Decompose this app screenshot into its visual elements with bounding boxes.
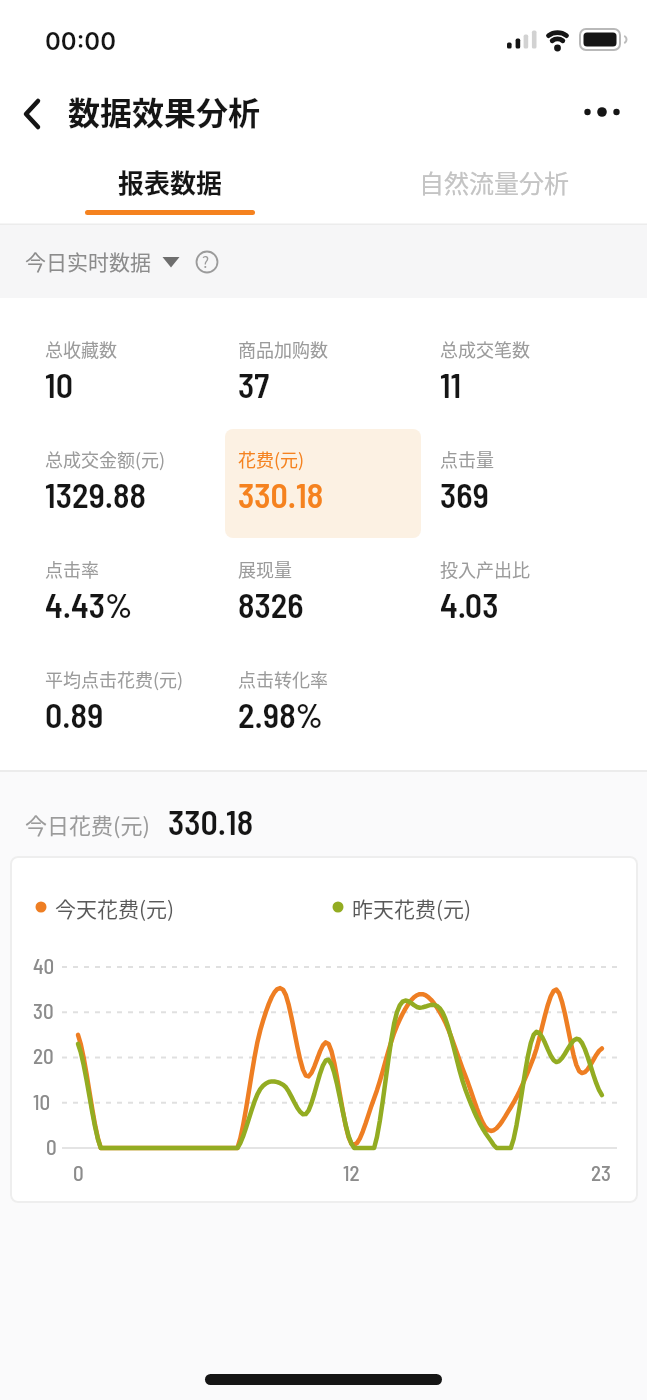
- staticText: 0.89: [45, 694, 104, 735]
- staticText: 37: [238, 364, 270, 405]
- staticText: ?: [202, 251, 210, 273]
- staticText: 今日花费(元): [25, 808, 150, 840]
- staticText: 2.98%: [238, 694, 323, 735]
- staticText: 20: [33, 1043, 54, 1068]
- button[interactable]: [324, 150, 647, 224]
- button[interactable]: [13, 92, 57, 136]
- staticText: 昨天花费(元): [352, 893, 472, 923]
- staticText: 总成交笔数: [440, 336, 530, 362]
- staticText: 点击量: [440, 446, 494, 472]
- staticText: 369: [440, 474, 489, 515]
- staticText: 花费(元): [238, 446, 305, 472]
- staticText: 330.18: [238, 474, 324, 515]
- staticText: 今天花费(元): [55, 893, 175, 923]
- staticText: 12: [343, 1160, 360, 1185]
- button[interactable]: [225, 429, 421, 538]
- staticText: 总收藏数: [45, 336, 117, 362]
- staticText: 10: [33, 1089, 51, 1114]
- button[interactable]: [0, 150, 323, 224]
- staticText: 投入产出比: [440, 556, 530, 582]
- staticText: 点击转化率: [238, 666, 328, 692]
- staticText: 0: [46, 1134, 57, 1159]
- staticText: 10: [45, 364, 73, 405]
- button[interactable]: [578, 92, 630, 132]
- button[interactable]: [0, 225, 647, 298]
- staticText: 30: [33, 998, 54, 1023]
- staticText: 总成交金额(元): [45, 446, 166, 472]
- staticText: 23: [591, 1160, 611, 1185]
- staticText: 展现量: [238, 556, 292, 582]
- staticText: 4.43%: [45, 584, 133, 625]
- staticText: 0: [73, 1160, 84, 1185]
- staticText: 40: [33, 953, 55, 978]
- staticText: 点击率: [45, 556, 99, 582]
- staticText: 自然流量分析: [419, 164, 570, 200]
- staticText: 1329.88: [45, 474, 146, 515]
- staticText: 4.03: [440, 584, 499, 625]
- staticText: 商品加购数: [238, 336, 328, 362]
- staticText: 330.18: [168, 801, 254, 842]
- staticText: 今日实时数据: [25, 246, 151, 276]
- staticText: 8326: [238, 584, 304, 625]
- staticText: 00:00: [45, 27, 116, 56]
- staticText: 报表数据: [118, 163, 223, 201]
- staticText: 11: [440, 364, 462, 405]
- staticText: 数据效果分析: [68, 88, 261, 134]
- staticText: 平均点击花费(元): [45, 666, 184, 692]
